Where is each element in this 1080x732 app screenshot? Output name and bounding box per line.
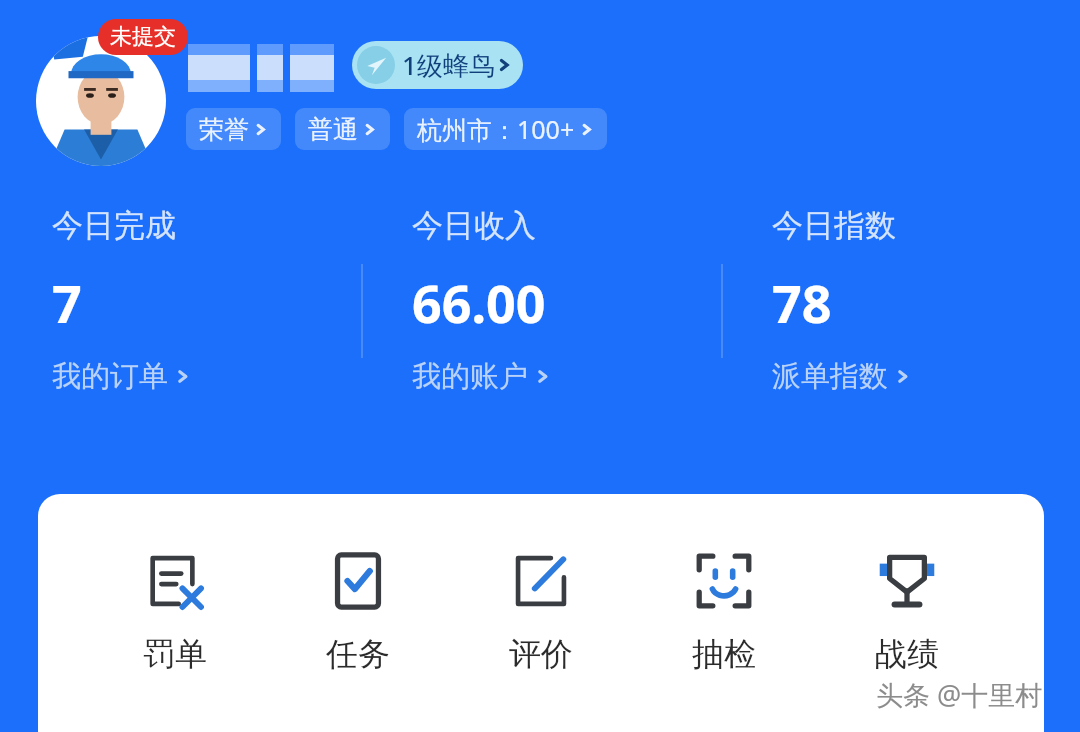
- button[interactable]: 未提交: [98, 19, 188, 55]
- staticText: 1级蜂鸟: [402, 47, 495, 83]
- button[interactable]: 普通: [295, 108, 390, 150]
- button[interactable]: Profile avatar: [36, 36, 166, 166]
- button[interactable]: 抽检: [678, 546, 770, 678]
- staticText: 78: [772, 267, 832, 338]
- staticText: 罚单: [143, 634, 207, 674]
- button[interactable]: 荣誉: [186, 108, 281, 150]
- staticText: 我的账户: [412, 358, 528, 395]
- button[interactable]: 杭州市：100+: [404, 108, 607, 150]
- staticText: 未提交: [110, 23, 176, 51]
- button[interactable]: 今日收入: [412, 206, 559, 395]
- button[interactable]: 今日指数: [772, 206, 919, 395]
- button[interactable]: 今日完成: [52, 206, 199, 395]
- staticText: 今日指数: [772, 206, 896, 245]
- staticText: 7: [52, 267, 82, 338]
- staticText: 今日完成: [52, 206, 176, 245]
- staticText: 荣誉: [199, 114, 249, 145]
- button[interactable]: 任务: [312, 546, 404, 678]
- staticText: 66.00: [412, 267, 546, 338]
- staticText: 评价: [509, 634, 573, 674]
- staticText: 战绩: [875, 634, 939, 674]
- staticText: 我的订单: [52, 358, 168, 395]
- button[interactable]: 罚单: [129, 546, 221, 678]
- button[interactable]: 战绩: [861, 546, 953, 678]
- staticText: 抽检: [692, 634, 756, 674]
- button[interactable]: 1级蜂鸟: [352, 41, 523, 89]
- staticText: 派单指数: [772, 358, 888, 395]
- staticText: 任务: [326, 634, 390, 674]
- staticText: 普通: [308, 114, 358, 145]
- button[interactable]: 评价: [495, 546, 587, 678]
- staticText: 杭州市：100+: [417, 112, 575, 146]
- staticText: 头条 @十里村: [876, 676, 1043, 713]
- staticText: 今日收入: [412, 206, 536, 245]
